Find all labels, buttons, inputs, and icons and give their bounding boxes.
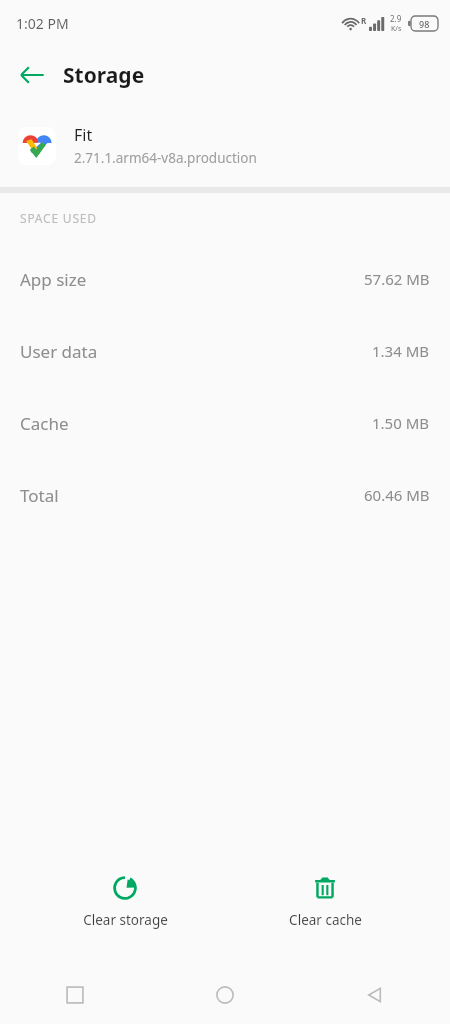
staticText: App size [20,268,87,291]
button[interactable]: Clear storage [50,867,200,937]
staticText: User data [20,340,98,363]
button[interactable]: Back [8,51,56,99]
staticText: R [361,15,367,26]
staticText: 1.50 MB [372,413,430,433]
button[interactable]: Back [300,965,450,1024]
staticText: Clear storage [83,911,168,929]
staticText: Clear cache [289,911,362,929]
staticText: 2.9 [390,13,402,24]
staticText: 57.62 MB [364,269,430,289]
staticText: K/s [391,24,402,34]
staticText: 1.34 MB [372,341,430,361]
staticText: 1:02 PM [16,14,69,33]
staticText: Fit [74,124,93,146]
button[interactable]: User data [0,315,450,387]
staticText: Storage [63,61,145,90]
staticText: SPACE USED [20,210,97,226]
button[interactable]: Total [0,459,450,531]
button[interactable]: Recent apps [0,965,150,1024]
staticText: 2.71.1.arm64-v8a.production [74,149,257,167]
button[interactable]: Fit [0,104,450,187]
staticText: 60.46 MB [364,485,430,505]
button[interactable]: Clear cache [250,867,400,937]
staticText: Total [20,484,59,507]
button[interactable]: App size [0,243,450,315]
staticText: 98 [419,18,430,30]
staticText: Cache [20,412,69,435]
button[interactable]: Home [150,965,300,1024]
button[interactable]: Cache [0,387,450,459]
